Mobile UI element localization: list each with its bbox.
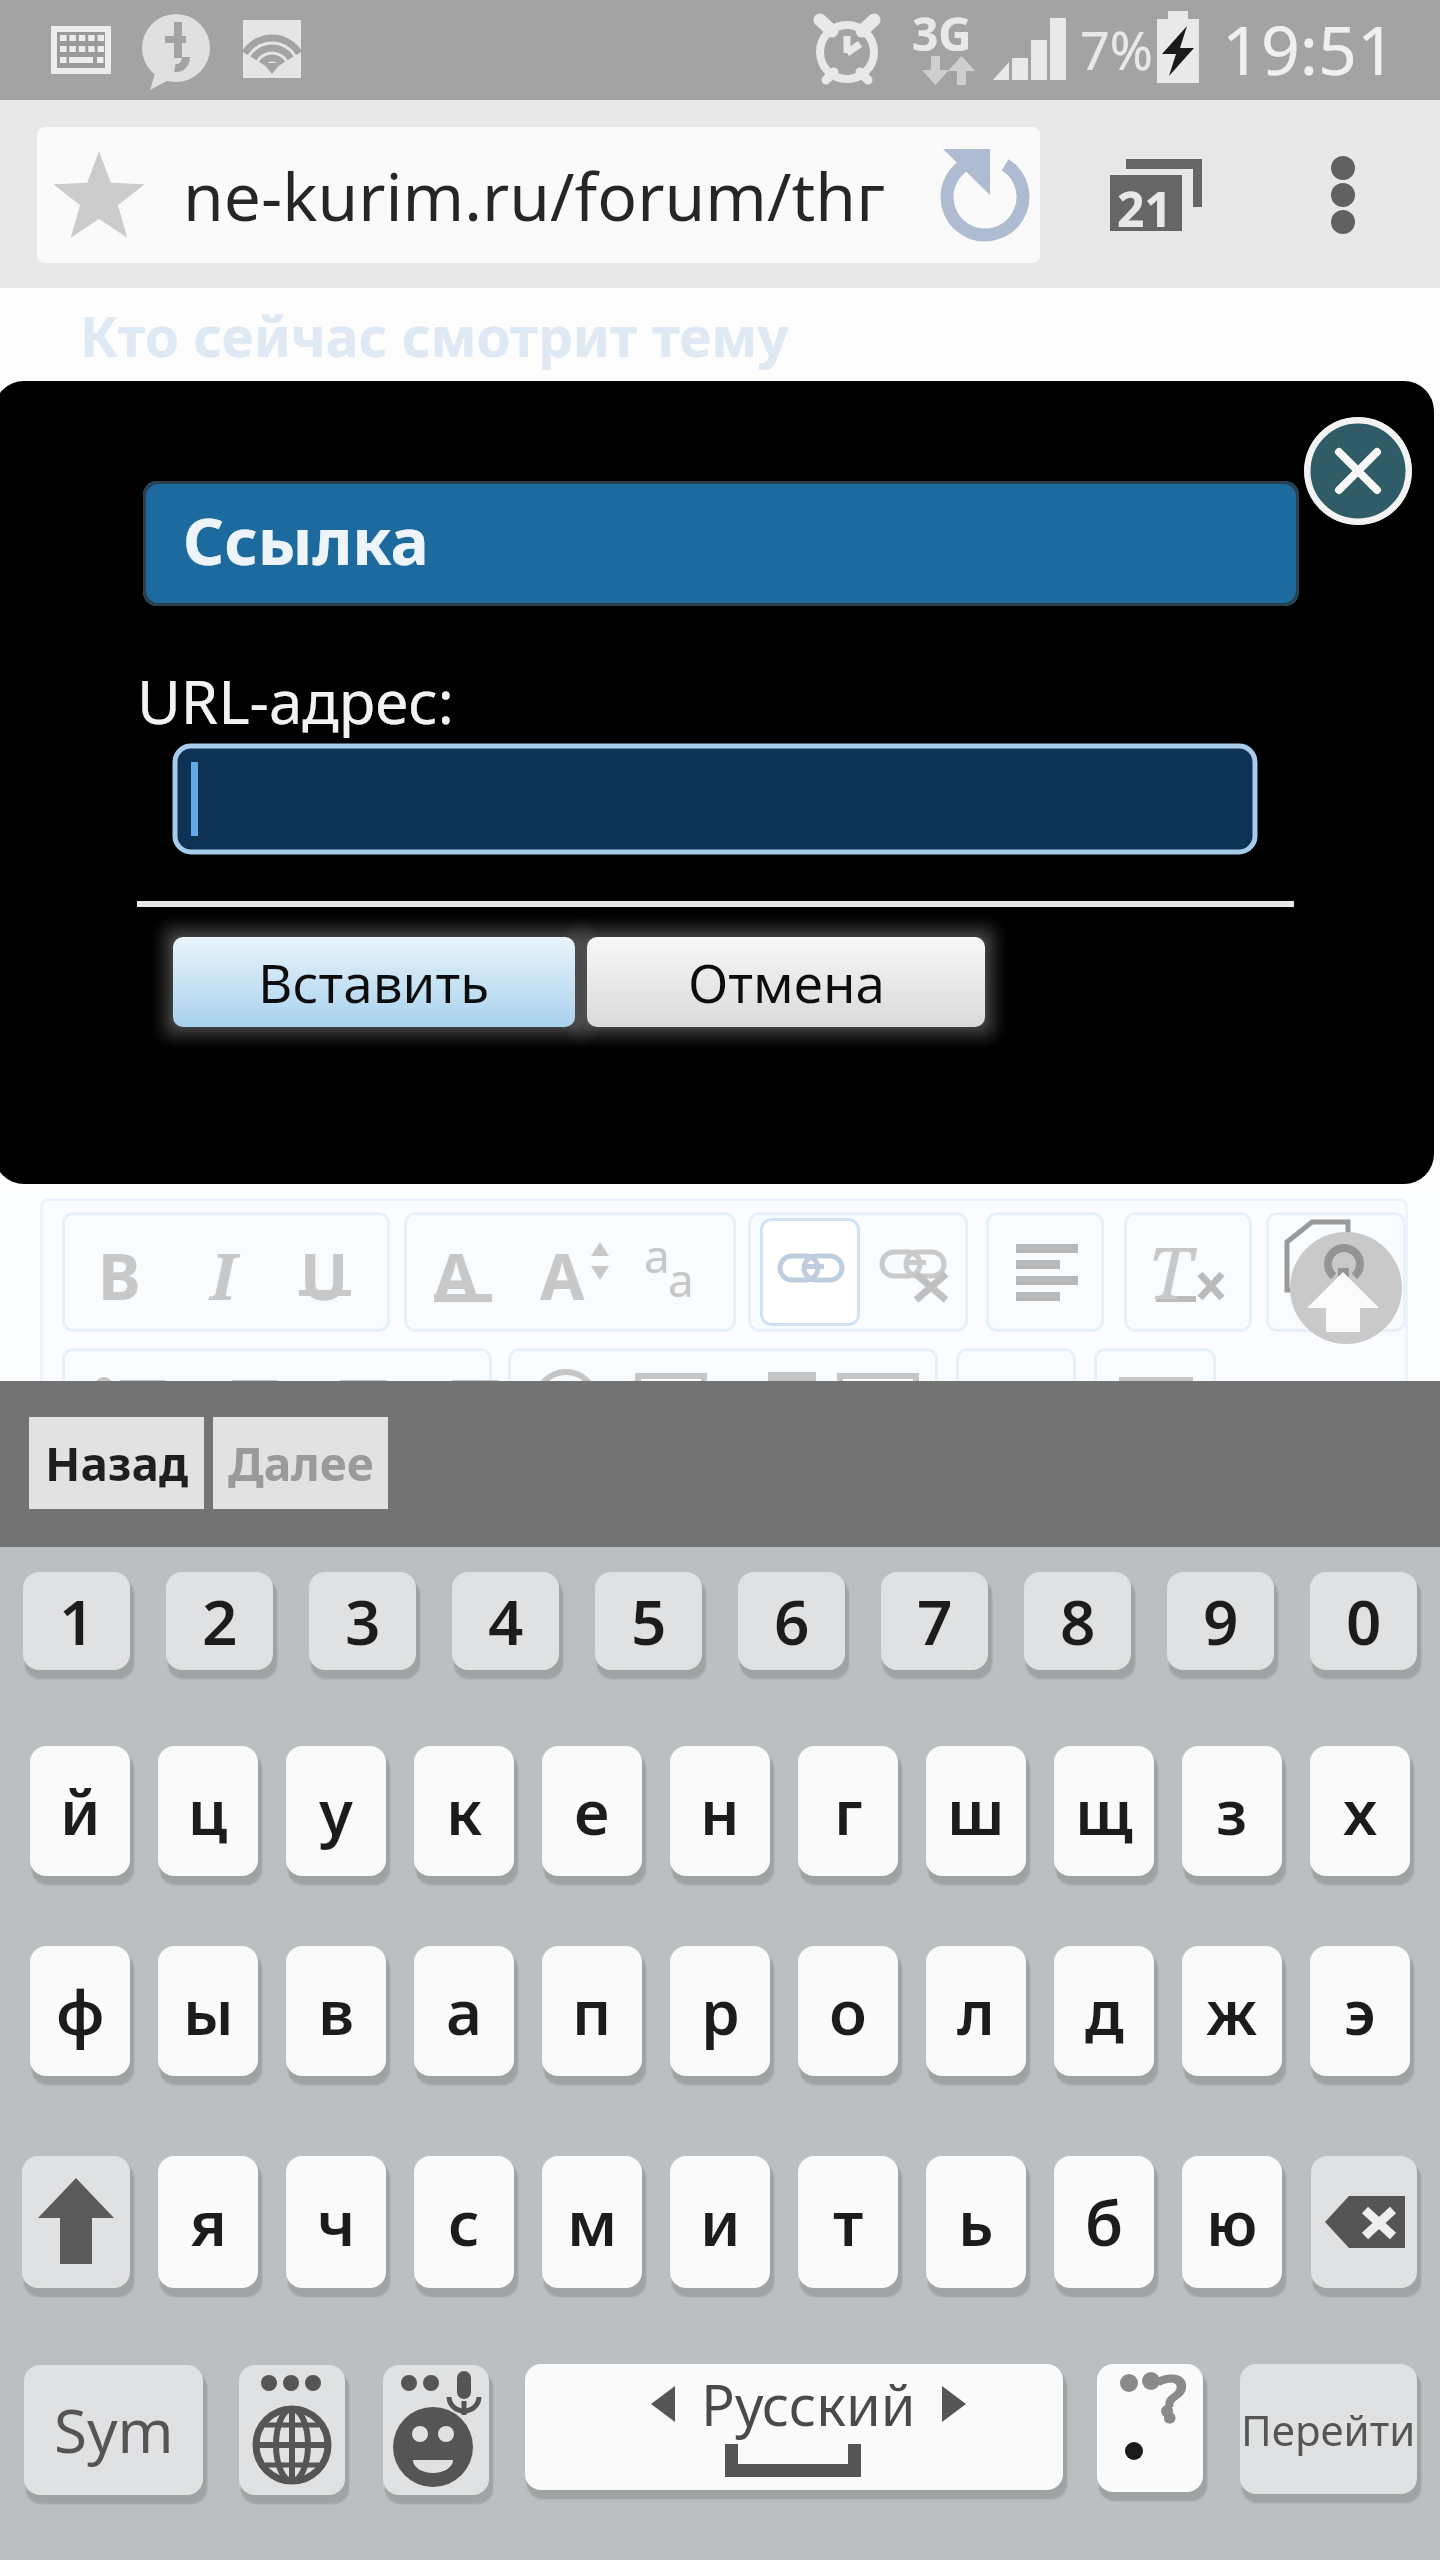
- staticText: т: [833, 2180, 864, 2264]
- button[interactable]: Назад: [29, 1417, 204, 1509]
- button[interactable]: 1: [23, 1572, 130, 1670]
- button[interactable]: и: [670, 2156, 770, 2288]
- button[interactable]: 5: [595, 1572, 702, 1670]
- button[interactable]: 2: [166, 1572, 273, 1670]
- button[interactable]: [760, 1218, 860, 1326]
- staticText: 5: [631, 1579, 667, 1663]
- button[interactable]: Reload: [917, 127, 1040, 263]
- button[interactable]: Emoji: [383, 2365, 489, 2495]
- button[interactable]: Далее: [213, 1417, 388, 1509]
- button[interactable]: п: [542, 1946, 642, 2076]
- button[interactable]: Shift: [22, 2156, 130, 2288]
- button[interactable]: Отмена: [587, 937, 985, 1027]
- staticText: м: [567, 2180, 618, 2264]
- staticText: ь: [958, 2180, 994, 2264]
- button[interactable]: й: [30, 1746, 130, 1876]
- staticText: к: [446, 1769, 483, 1853]
- button[interactable]: [62, 1348, 492, 1468]
- staticText: Sym: [54, 2389, 174, 2471]
- button[interactable]: ч: [286, 2156, 386, 2288]
- staticText: 1: [200, 1366, 225, 1423]
- staticText: ч: [317, 2180, 356, 2264]
- button[interactable]: н: [670, 1746, 770, 1876]
- button[interactable]: ж: [1182, 1946, 1282, 2076]
- button[interactable]: [404, 1212, 736, 1332]
- button[interactable]: Sym: [24, 2365, 203, 2495]
- button[interactable]: Punctuation: [1097, 2364, 1203, 2492]
- button[interactable]: о: [798, 1946, 898, 2076]
- staticText: Вставить: [258, 946, 490, 1018]
- button[interactable]: г: [798, 1746, 898, 1876]
- button[interactable]: [62, 1212, 390, 1332]
- button[interactable]: [956, 1348, 1076, 1468]
- button[interactable]: 9: [1167, 1572, 1274, 1670]
- staticText: Ссылка: [183, 497, 429, 584]
- button[interactable]: 8: [1024, 1572, 1131, 1670]
- button[interactable]: я: [158, 2156, 258, 2288]
- staticText: Назад: [45, 1432, 189, 1495]
- button[interactable]: м: [542, 2156, 642, 2288]
- button[interactable]: ы: [158, 1946, 258, 2076]
- button[interactable]: [748, 1212, 968, 1332]
- button[interactable]: х: [1310, 1746, 1410, 1876]
- button[interactable]: ь: [926, 2156, 1026, 2288]
- button[interactable]: ю: [1182, 2156, 1282, 2288]
- button[interactable]: [175, 746, 1255, 852]
- button[interactable]: 3: [309, 1572, 416, 1670]
- button[interactable]: Space: [525, 2364, 1063, 2490]
- button[interactable]: 7: [881, 1572, 988, 1670]
- staticText: с: [448, 2180, 480, 2264]
- staticText: A: [540, 1232, 585, 1319]
- staticText: ?: [1156, 2364, 1188, 2442]
- button[interactable]: [1094, 1348, 1216, 1468]
- button[interactable]: а: [414, 1946, 514, 2076]
- button[interactable]: 6: [738, 1572, 845, 1670]
- button[interactable]: с: [414, 2156, 514, 2288]
- staticText: з: [1216, 1769, 1248, 1853]
- button[interactable]: щ: [1054, 1746, 1154, 1876]
- staticText: ф: [56, 1969, 105, 2053]
- button[interactable]: ф: [30, 1946, 130, 2076]
- button[interactable]: [508, 1348, 938, 1468]
- staticText: э: [1344, 1969, 1376, 2053]
- button[interactable]: т: [798, 2156, 898, 2288]
- button[interactable]: More options: [1298, 138, 1390, 254]
- button[interactable]: Вставить: [173, 937, 575, 1027]
- button[interactable]: Upload: [1290, 1232, 1402, 1344]
- button[interactable]: ш: [926, 1746, 1026, 1876]
- staticText: B: [98, 1232, 141, 1319]
- button[interactable]: 4: [452, 1572, 559, 1670]
- button[interactable]: Close: [1304, 417, 1412, 525]
- button[interactable]: ц: [158, 1746, 258, 1876]
- button[interactable]: Перейти: [1240, 2364, 1417, 2494]
- button[interactable]: [986, 1212, 1104, 1332]
- button[interactable]: Language: [239, 2365, 345, 2495]
- button[interactable]: у: [286, 1746, 386, 1876]
- staticText: Далее: [228, 1432, 374, 1495]
- button[interactable]: б: [1054, 2156, 1154, 2288]
- button[interactable]: д: [1054, 1946, 1154, 2076]
- button[interactable]: [1266, 1212, 1406, 1332]
- staticText: 7%: [1080, 14, 1153, 85]
- staticText: 3: [345, 1579, 381, 1663]
- button[interactable]: [1124, 1212, 1252, 1332]
- button[interactable]: ne-kurim.ru/forum/thг: [37, 127, 1040, 263]
- staticText: 0: [1346, 1579, 1382, 1663]
- button[interactable]: р: [670, 1946, 770, 2076]
- button[interactable]: к: [414, 1746, 514, 1876]
- button[interactable]: е: [542, 1746, 642, 1876]
- button[interactable]: л: [926, 1946, 1026, 2076]
- staticText: ю: [1206, 2180, 1258, 2264]
- staticText: 6: [774, 1579, 810, 1663]
- button[interactable]: в: [286, 1946, 386, 2076]
- staticText: ж: [1206, 1969, 1258, 2053]
- button[interactable]: Backspace: [1311, 2156, 1417, 2288]
- staticText: щ: [1075, 1769, 1133, 1853]
- staticText: ne-kurim.ru/forum/thг: [183, 150, 886, 240]
- button[interactable]: э: [1310, 1946, 1410, 2076]
- button[interactable]: Tabs: [1110, 159, 1210, 243]
- staticText: 8: [1060, 1579, 1096, 1663]
- button[interactable]: з: [1182, 1746, 1282, 1876]
- button[interactable]: 0: [1310, 1572, 1417, 1670]
- staticText: п: [572, 1969, 612, 2053]
